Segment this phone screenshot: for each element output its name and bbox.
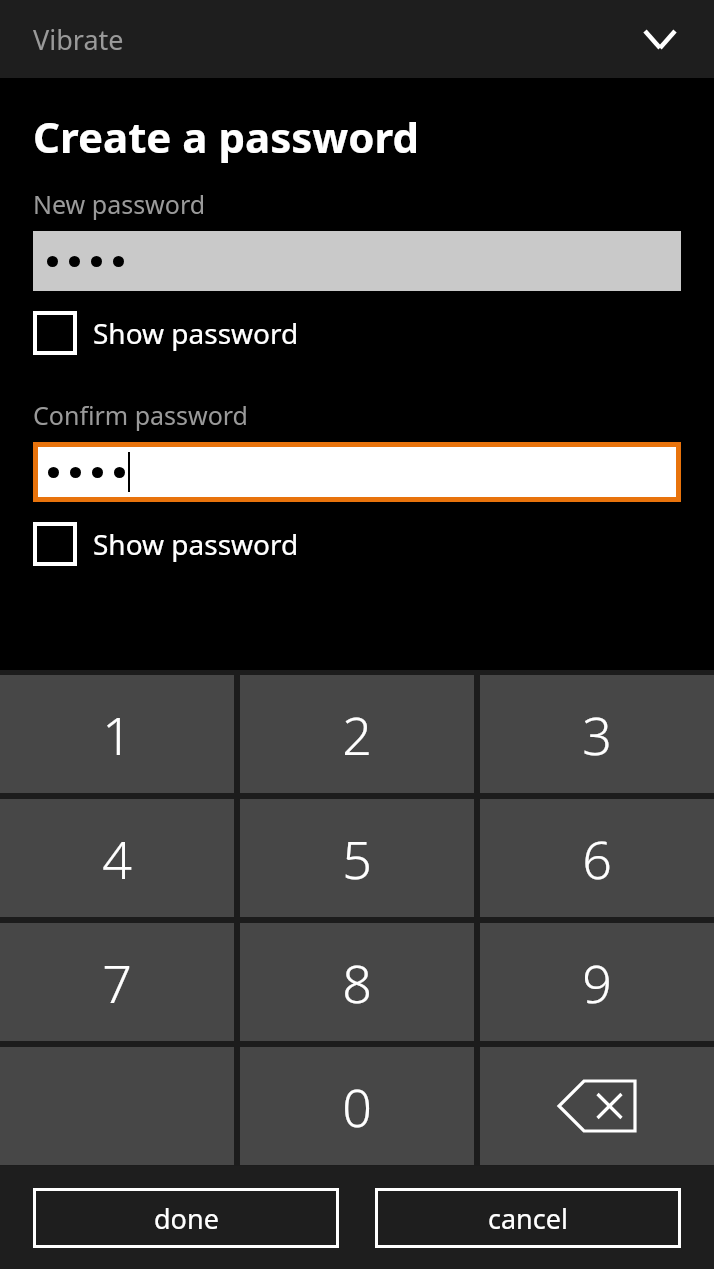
button[interactable]: 7 (0, 923, 234, 1041)
staticText: Vibrate (33, 21, 124, 58)
staticText: 1 (102, 699, 132, 770)
button[interactable]: 5 (240, 799, 474, 917)
staticText: 5 (342, 823, 372, 894)
button[interactable]: Show password (33, 516, 299, 572)
staticText: 7 (102, 947, 132, 1018)
staticText: 6 (582, 823, 612, 894)
staticText: 2 (342, 699, 372, 770)
staticText: 8 (342, 947, 372, 1018)
staticText: Confirm password (33, 398, 248, 432)
button[interactable] (33, 231, 681, 291)
button[interactable]: 1 (0, 675, 234, 793)
staticText: 9 (582, 947, 612, 1018)
button[interactable]: 8 (240, 923, 474, 1041)
button[interactable]: 3 (480, 675, 714, 793)
staticText: cancel (488, 1200, 568, 1237)
button[interactable]: Backspace (480, 1047, 714, 1165)
staticText: 3 (582, 699, 612, 770)
button[interactable]: 4 (0, 799, 234, 917)
button[interactable]: Vibrate (0, 0, 714, 78)
button[interactable]: done (33, 1188, 339, 1248)
staticText: Show password (93, 314, 299, 352)
staticText: 0 (342, 1071, 372, 1142)
staticText: Show password (93, 525, 299, 563)
staticText: done (154, 1200, 219, 1237)
button[interactable]: cancel (375, 1188, 681, 1248)
button[interactable] (38, 447, 676, 497)
staticText: New password (33, 187, 206, 221)
button[interactable]: Expand (636, 15, 684, 63)
button[interactable]: 6 (480, 799, 714, 917)
staticText: Create a password (33, 108, 419, 165)
button[interactable]: Show password (33, 305, 299, 361)
button[interactable]: 9 (480, 923, 714, 1041)
button[interactable]: 2 (240, 675, 474, 793)
button[interactable]: 0 (240, 1047, 474, 1165)
staticText: 4 (102, 823, 132, 894)
